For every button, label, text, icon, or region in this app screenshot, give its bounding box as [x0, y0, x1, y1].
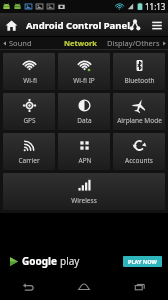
staticText: Wireless	[71, 196, 97, 205]
staticText: PLAY NOW	[128, 258, 157, 265]
staticText: Display/Others	[107, 38, 160, 48]
button[interactable]: Wi-fi	[3, 53, 55, 90]
button[interactable]: Home	[0, 14, 22, 36]
staticText: play	[60, 254, 80, 268]
staticText: Airplane Mode	[117, 116, 162, 125]
button[interactable]: Data	[58, 93, 110, 130]
button[interactable]: Network	[54, 37, 107, 49]
button[interactable]: GPS	[3, 93, 55, 130]
button[interactable]: Airplane Mode	[113, 93, 165, 130]
staticText: 11:13	[145, 1, 166, 12]
staticText: Android Control Panel	[26, 19, 130, 32]
staticText: GPS	[23, 116, 36, 125]
staticText: Network	[64, 38, 97, 48]
staticText: APN	[78, 156, 92, 165]
button[interactable]: Share	[124, 14, 146, 36]
button[interactable]: Sound	[0, 37, 54, 49]
button[interactable]: PLAY NOW	[123, 256, 162, 267]
button[interactable]: Wi-fi IP	[58, 53, 110, 90]
button[interactable]: Google Play advertisement	[0, 248, 168, 274]
button[interactable]: Bluetooth	[113, 53, 165, 90]
button[interactable]: Accounts	[113, 133, 165, 170]
staticText: Sound	[9, 38, 32, 48]
button[interactable]: Home	[56, 274, 112, 300]
staticText: Google	[22, 254, 58, 268]
button[interactable]: Wireless	[3, 173, 165, 210]
staticText: Bluetooth	[124, 76, 155, 85]
staticText: Carrier	[18, 156, 40, 165]
button[interactable]: Display/Others	[107, 37, 168, 49]
button[interactable]: Menu	[146, 14, 168, 36]
staticText: Wi-fi IP	[73, 76, 95, 85]
button[interactable]: Recent apps	[112, 274, 168, 300]
button[interactable]: Back	[0, 274, 56, 300]
button[interactable]: Carrier	[3, 133, 55, 170]
staticText: Data	[77, 116, 92, 125]
staticText: Accounts	[125, 156, 153, 165]
button[interactable]: APN	[58, 133, 110, 170]
staticText: Wi-fi	[23, 76, 37, 85]
